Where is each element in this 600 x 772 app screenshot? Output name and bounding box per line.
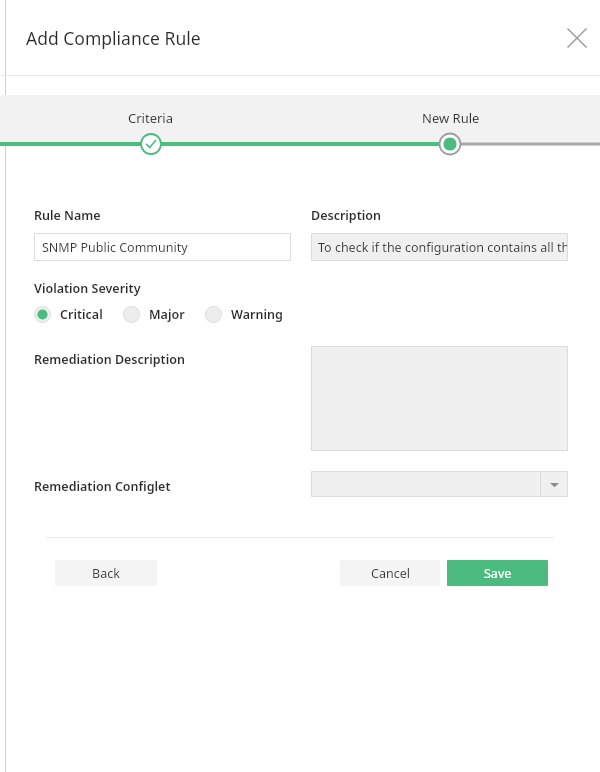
staticText: Add Compliance Rule bbox=[26, 26, 201, 50]
button[interactable]: Remediation description text area bbox=[311, 346, 568, 451]
button[interactable]: Critical bbox=[34, 306, 105, 323]
staticText: Critical bbox=[60, 306, 103, 323]
staticText: SNMP Public Community bbox=[42, 239, 188, 256]
staticText: Cancel bbox=[371, 565, 410, 582]
staticText: To check if the configuration contains a… bbox=[318, 239, 568, 256]
button[interactable]: Close bbox=[563, 24, 591, 52]
staticText: Remediation Configlet bbox=[34, 478, 171, 495]
button[interactable]: Save bbox=[447, 560, 548, 586]
button[interactable]: Major bbox=[123, 306, 187, 323]
button[interactable]: SNMP Public Community bbox=[34, 233, 291, 261]
staticText: Major bbox=[149, 306, 185, 323]
staticText: Description bbox=[311, 207, 381, 224]
staticText: Save bbox=[484, 565, 512, 582]
button[interactable]: Warning bbox=[205, 306, 285, 323]
staticText: Back bbox=[92, 565, 120, 582]
button[interactable]: Remediation Configlet dropdown bbox=[311, 471, 568, 497]
staticText: Warning bbox=[231, 306, 283, 323]
button[interactable]: To check if the configuration contains a… bbox=[311, 233, 568, 261]
button[interactable]: Back bbox=[55, 560, 157, 586]
staticText: Remediation Description bbox=[34, 351, 185, 368]
staticText: New Rule bbox=[422, 109, 480, 127]
staticText: Violation Severity bbox=[34, 280, 141, 297]
staticText: Criteria bbox=[128, 109, 173, 127]
staticText: Rule Name bbox=[34, 207, 101, 224]
button[interactable]: Cancel bbox=[340, 560, 440, 586]
